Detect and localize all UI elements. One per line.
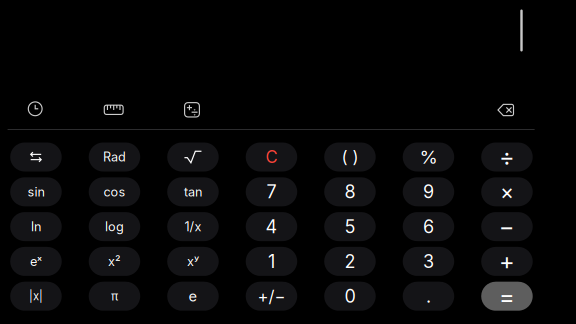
button[interactable]: π [89, 282, 140, 311]
staticText: 4 [265, 216, 277, 237]
staticText: ÷ [499, 142, 515, 171]
staticText: . [426, 285, 431, 307]
staticText: log [105, 219, 124, 234]
button[interactable]: = [481, 282, 533, 311]
button[interactable]: x² [89, 247, 140, 276]
staticText: % [419, 146, 437, 168]
button[interactable]: × [481, 177, 533, 206]
button[interactable]: Delete [482, 92, 530, 128]
staticText: cos [103, 184, 125, 199]
button[interactable]: eˣ [10, 247, 62, 276]
staticText: 2 [344, 250, 355, 272]
button[interactable]: C [246, 142, 297, 171]
button[interactable]: % [403, 142, 454, 171]
staticText: x² [108, 254, 121, 269]
button[interactable]: 0 [324, 282, 376, 311]
staticText: − [499, 212, 515, 241]
button[interactable]: 8 [324, 177, 376, 206]
button[interactable]: Calculator mode [168, 92, 216, 128]
button[interactable]: tan [167, 177, 219, 206]
button[interactable]: cos [89, 177, 140, 206]
staticText: e [188, 287, 197, 305]
staticText: 9 [423, 181, 434, 203]
button[interactable]: 3 [403, 247, 454, 276]
button[interactable]: 7 [246, 177, 297, 206]
button[interactable]: |x| [10, 282, 62, 311]
button[interactable]: 6 [403, 212, 454, 241]
button[interactable]: sin [10, 177, 62, 206]
staticText: 3 [423, 250, 434, 272]
button[interactable]: ÷ [481, 142, 533, 171]
staticText: 6 [423, 216, 434, 237]
staticText: ln [31, 219, 41, 234]
staticText: 5 [344, 216, 355, 237]
button[interactable]: History [11, 91, 59, 127]
staticText: 8 [344, 181, 355, 203]
staticText: sin [27, 184, 44, 199]
staticText: 7 [266, 181, 276, 203]
staticText: xʸ [187, 254, 199, 269]
staticText: +/− [257, 286, 285, 306]
button[interactable]: . [403, 282, 454, 311]
staticText: 1/x [184, 219, 201, 234]
staticText: tan [184, 184, 202, 199]
staticText: |x| [29, 289, 43, 303]
button[interactable]: 9 [403, 177, 454, 206]
staticText: × [500, 179, 514, 205]
button[interactable]: 5 [324, 212, 376, 241]
staticText: eˣ [30, 254, 42, 269]
button[interactable]: Swap [10, 142, 62, 171]
button[interactable]: ( ) [324, 142, 376, 171]
button[interactable]: − [481, 212, 533, 241]
button[interactable]: 1 [246, 247, 297, 276]
staticText: C [265, 147, 277, 167]
button[interactable]: xʸ [167, 247, 219, 276]
button[interactable]: e [167, 282, 219, 311]
staticText: + [499, 247, 515, 276]
button[interactable]: 4 [246, 212, 297, 241]
button[interactable]: ln [10, 212, 62, 241]
button[interactable]: +/− [246, 282, 297, 311]
button[interactable]: 1/x [167, 212, 219, 241]
button[interactable]: + [481, 247, 533, 276]
button[interactable]: Rad [89, 142, 140, 171]
staticText: Rad [103, 149, 126, 165]
staticText: ( ) [341, 147, 358, 167]
staticText: 1 [268, 250, 275, 272]
button[interactable]: Square root [167, 142, 219, 171]
button[interactable]: log [89, 212, 140, 241]
staticText: 0 [344, 285, 355, 307]
button[interactable]: 2 [324, 247, 376, 276]
button[interactable]: Unit conversion [90, 92, 138, 128]
staticText: = [499, 282, 515, 311]
staticText: π [111, 289, 118, 303]
